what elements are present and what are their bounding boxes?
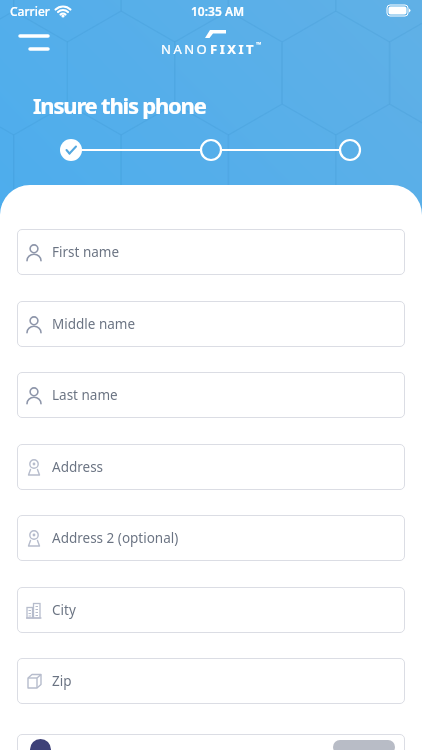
button[interactable]: Address 2 (optional): [17, 515, 405, 561]
staticText: Carrier: [10, 3, 50, 19]
button[interactable]: First name: [17, 229, 405, 275]
staticText: Last name: [52, 386, 118, 404]
button[interactable]: [12, 24, 56, 60]
staticText: City: [52, 601, 76, 619]
staticText: Address: [52, 458, 104, 476]
button[interactable]: City: [17, 587, 405, 633]
button[interactable]: Middle name: [17, 301, 405, 347]
button[interactable]: Zip: [17, 658, 405, 704]
staticText: Address 2 (optional): [52, 529, 179, 547]
button[interactable]: Address: [17, 444, 405, 490]
staticText: Zip: [52, 672, 72, 690]
staticText: 10:35 AM: [191, 3, 245, 19]
staticText: FIXIT: [210, 40, 256, 58]
staticText: First name: [52, 243, 120, 261]
staticText: Insure this phone: [33, 90, 206, 120]
button[interactable]: Last name: [17, 372, 405, 418]
staticText: Middle name: [52, 315, 136, 333]
button[interactable]: [17, 734, 405, 750]
staticText: NANO: [161, 40, 210, 58]
staticText: ™: [256, 40, 262, 50]
